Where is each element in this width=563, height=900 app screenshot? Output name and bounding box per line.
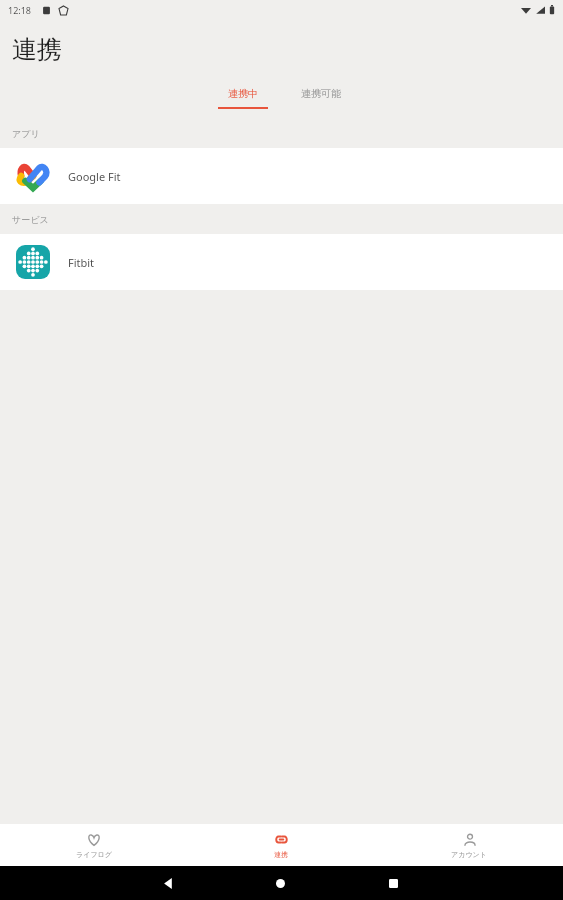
staticText: Google Fit bbox=[68, 169, 121, 184]
button[interactable]: Fitbit bbox=[0, 234, 563, 290]
staticText: 連携 bbox=[12, 34, 62, 65]
staticText: アプリ bbox=[12, 128, 40, 139]
button[interactable]: 連携中 bbox=[208, 83, 278, 113]
button[interactable]: Google Fit bbox=[0, 148, 563, 204]
button[interactable]: ライフログ bbox=[0, 824, 187, 866]
staticText: 連携可能 bbox=[301, 87, 341, 100]
staticText: 連携中 bbox=[228, 87, 258, 100]
staticText: ライフログ bbox=[76, 850, 112, 859]
staticText: Fitbit bbox=[68, 255, 95, 270]
button[interactable]: 連携 bbox=[187, 824, 375, 866]
staticText: アカウント bbox=[451, 850, 487, 859]
staticText: 12:18 bbox=[8, 4, 32, 16]
staticText: 連携 bbox=[274, 850, 288, 859]
button[interactable]: アカウント bbox=[375, 824, 563, 866]
button[interactable]: 連携可能 bbox=[286, 83, 356, 113]
staticText: サービス bbox=[12, 214, 49, 225]
